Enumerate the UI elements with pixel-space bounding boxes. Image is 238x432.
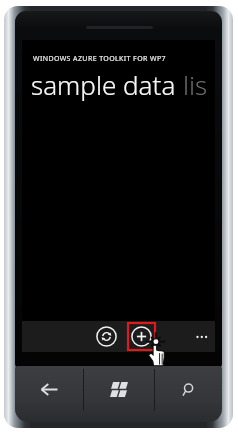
button[interactable]: Refresh bbox=[96, 326, 117, 347]
button[interactable]: Back bbox=[15, 366, 83, 413]
staticText: sample data bbox=[31, 67, 183, 102]
staticText: lis bbox=[183, 67, 208, 102]
button[interactable]: Start bbox=[83, 366, 154, 413]
button[interactable]: Search bbox=[154, 366, 222, 413]
button[interactable]: Add bbox=[128, 323, 155, 350]
button[interactable]: More options bbox=[187, 321, 215, 352]
staticText: WINDOWS AZURE TOOLKIT FOR WP7 bbox=[33, 54, 166, 64]
